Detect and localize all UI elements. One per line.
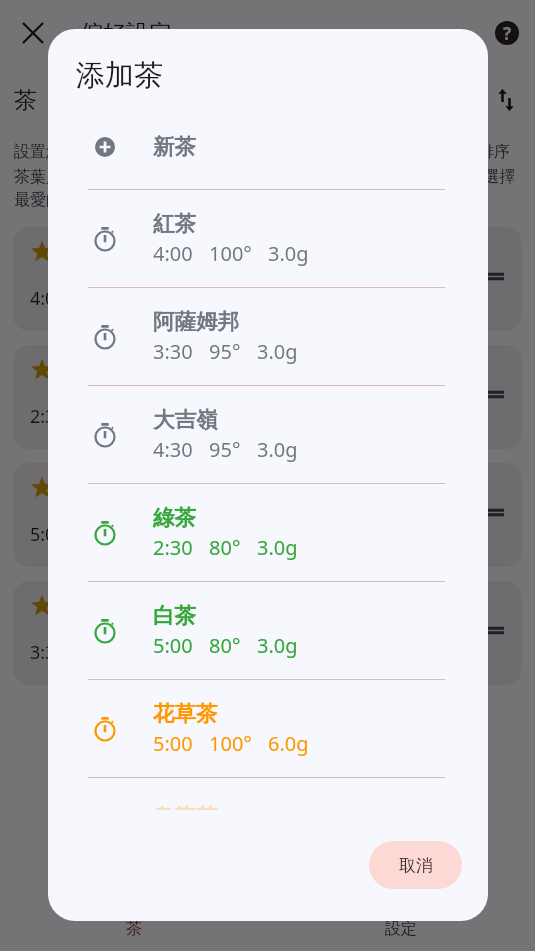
staticText: 4:00 <box>153 240 193 267</box>
staticText: 6.0g <box>268 730 309 757</box>
staticText: ? <box>503 22 512 45</box>
staticText: 茶 <box>14 86 37 115</box>
button[interactable]: 設定 <box>267 907 535 951</box>
staticText: 95° <box>209 436 241 463</box>
staticText: 5:00 80° 3.0g <box>30 522 150 547</box>
button[interactable]: 紅茶 <box>88 190 445 288</box>
staticText: 新茶 <box>153 133 196 160</box>
button[interactable]: 紅茶 <box>13 345 522 449</box>
staticText: 偏好設定 <box>80 19 172 48</box>
staticText: 4:30 <box>153 436 193 463</box>
staticText: 花草茶 <box>153 700 218 727</box>
button[interactable]: 紅茶 <box>13 227 522 331</box>
staticText: 3.0g <box>268 240 309 267</box>
button[interactable]: 綠茶 <box>88 484 445 582</box>
button[interactable]: 大吉嶺 <box>88 386 445 484</box>
staticText: 設置您喜愛的茶的沖泡時間、水溫與茶葉建議使用量。長按可拖曳排序 <box>14 142 510 162</box>
button[interactable]: 白茶 <box>88 582 445 680</box>
staticText: 設定 <box>385 919 417 939</box>
staticText: 大吉嶺 <box>153 406 218 433</box>
staticText: 烏龍茶 <box>153 803 218 810</box>
staticText: 3.0g <box>257 338 298 365</box>
staticText: 取消 <box>399 855 433 876</box>
staticText: 2:30 80° 3.0g <box>30 404 150 429</box>
staticText: 白茶 <box>153 602 196 629</box>
staticText: 阿薩姆邦 <box>153 308 239 335</box>
button[interactable]: 取消 <box>369 841 462 889</box>
staticText: 3.0g <box>257 534 298 561</box>
button[interactable]: 阿薩姆邦 <box>88 288 445 386</box>
button[interactable]: 紅茶 <box>13 463 522 567</box>
staticText: 茶葉用量以每 100 毫升水為準。目前清單中總共有 8 個茶的項目可選擇 <box>14 165 516 187</box>
staticText: 3:30 95° 3.0g <box>30 640 150 665</box>
button[interactable]: Close <box>18 18 48 48</box>
staticText: 3.0g <box>257 436 298 463</box>
staticText: 5:00 <box>153 632 193 659</box>
staticText: 100° <box>209 240 252 267</box>
staticText: 添加茶 <box>76 57 163 94</box>
staticText: 紅茶 <box>153 210 196 237</box>
staticText: 紅茶 <box>64 240 102 264</box>
button[interactable]: 花草茶 <box>88 680 445 778</box>
staticText: 80° <box>209 632 241 659</box>
button[interactable]: 新茶 <box>88 104 445 190</box>
staticText: 95° <box>209 338 241 365</box>
staticText: 2:30 <box>153 534 193 561</box>
staticText: 3.0g <box>257 632 298 659</box>
staticText: 4:00 100° 3.0g <box>30 286 160 311</box>
button[interactable]: Sort <box>491 85 521 115</box>
button[interactable]: 茶 <box>0 907 267 951</box>
staticText: 綠茶 <box>153 504 196 531</box>
staticText: 最愛的茶會自動顯示在清單的最上方。 <box>14 190 286 210</box>
staticText: 80° <box>209 534 241 561</box>
staticText: 5:00 <box>153 730 193 757</box>
button[interactable]: Help <box>491 17 523 49</box>
staticText: 100° <box>209 730 252 757</box>
button[interactable]: 紅茶 <box>13 581 522 685</box>
staticText: 紅茶 <box>64 476 102 500</box>
staticText: 3:30 <box>153 338 193 365</box>
staticText: 茶 <box>126 919 142 939</box>
